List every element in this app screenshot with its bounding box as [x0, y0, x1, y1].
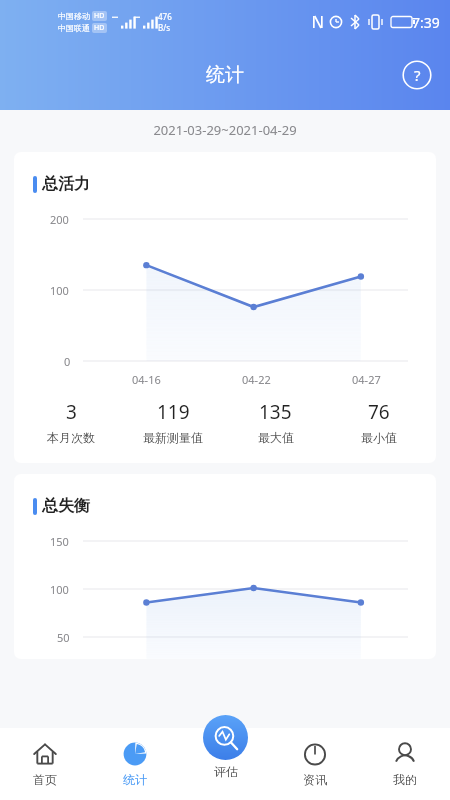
staticText: 总失衡 — [42, 496, 90, 516]
staticText: 统计 — [123, 772, 147, 787]
staticText: 100 — [50, 283, 69, 298]
staticText: 首页 — [33, 772, 57, 787]
staticText: 0 — [64, 354, 71, 369]
staticText: 资讯 — [303, 772, 327, 787]
staticText: 我的 — [393, 772, 417, 787]
staticText: 7:39 — [412, 13, 440, 32]
staticText: 04-16 — [132, 372, 161, 387]
staticText: 200 — [50, 212, 69, 227]
button[interactable]: 资讯 — [270, 728, 360, 800]
staticText: 150 — [50, 534, 69, 549]
staticText: 476 — [158, 11, 172, 22]
staticText: 119 — [157, 399, 190, 425]
staticText: 中国移动 — [58, 11, 90, 21]
staticText: 2021-03-29~2021-04-29 — [0, 121, 450, 139]
button[interactable]: 评估 — [203, 715, 248, 779]
staticText: 135 — [259, 399, 292, 425]
button[interactable]: 首页 — [0, 728, 90, 800]
staticText: 100 — [50, 582, 69, 597]
staticText: B/s — [158, 22, 171, 33]
staticText: 50 — [57, 630, 70, 645]
staticText: 04-27 — [352, 372, 381, 387]
staticText: 总活力 — [42, 174, 90, 194]
staticText: 04-22 — [242, 372, 271, 387]
staticText: 统计 — [206, 63, 244, 87]
staticText: 3 — [66, 399, 77, 425]
staticText: HD — [94, 23, 105, 33]
staticText: 最新测量值 — [143, 430, 203, 445]
staticText: 本月次数 — [47, 430, 95, 445]
staticText: 中国联通 — [58, 23, 90, 33]
staticText: ? — [414, 65, 421, 85]
button[interactable]: 总失衡 — [14, 474, 436, 659]
staticText: HD — [94, 11, 105, 21]
staticText: 最大值 — [258, 430, 294, 445]
button[interactable]: 统计 — [90, 728, 180, 800]
staticText: 76 — [368, 399, 390, 425]
button[interactable]: 我的 — [360, 728, 450, 800]
button[interactable]: 总活力 — [14, 152, 436, 463]
staticText: 最小值 — [361, 430, 397, 445]
staticText: 评估 — [214, 764, 238, 779]
button[interactable]: Help — [402, 60, 432, 90]
